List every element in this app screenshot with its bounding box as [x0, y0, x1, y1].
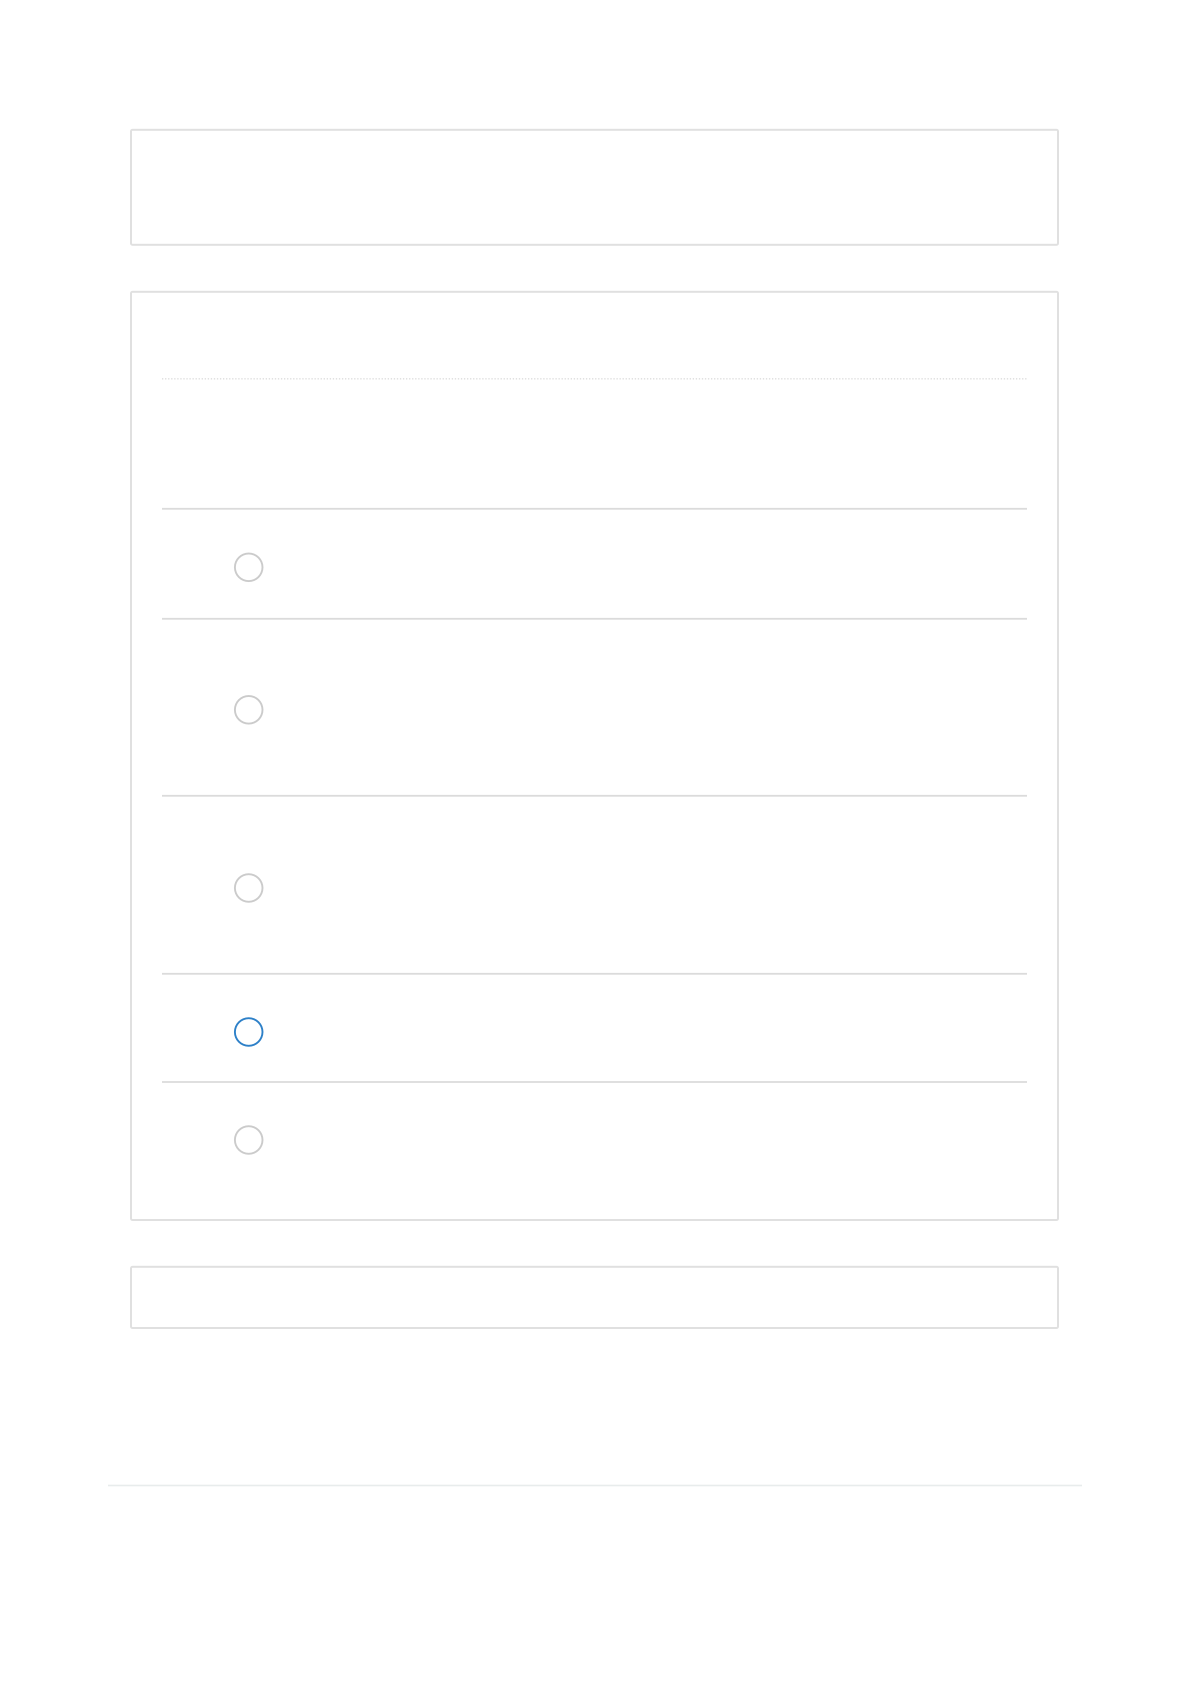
button[interactable]: Option 5 [162, 1082, 1027, 1220]
button[interactable]: Option 4 [162, 974, 1027, 1082]
button[interactable]: Option 3 [162, 796, 1027, 974]
button[interactable]: Option 2 [162, 619, 1027, 796]
button[interactable]: Option 1 [162, 509, 1027, 619]
